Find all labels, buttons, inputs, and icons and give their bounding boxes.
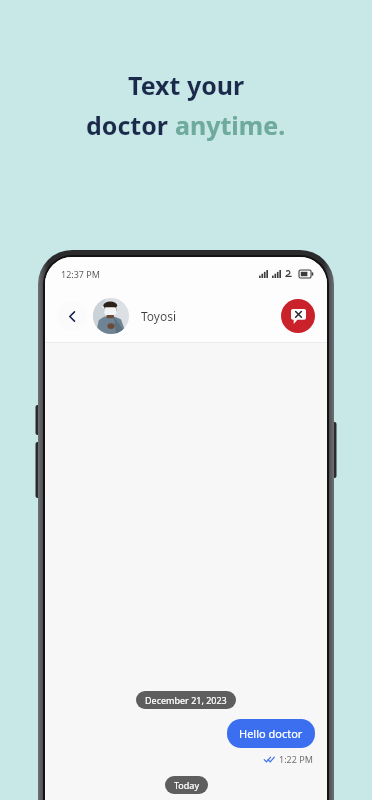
staticText: Text your xyxy=(128,68,245,102)
staticText: anytime. xyxy=(175,108,286,142)
staticText: 12:37 PM xyxy=(61,268,100,280)
staticText: 1:22 PM xyxy=(279,753,313,765)
staticText: Toyosi xyxy=(141,308,177,324)
staticText: Today xyxy=(174,779,199,791)
button[interactable]: Hello doctor xyxy=(227,719,315,748)
button[interactable]: End chat xyxy=(281,299,315,333)
button[interactable]: Back xyxy=(57,301,87,331)
staticText: doctor xyxy=(86,108,175,142)
staticText: December 21, 2023 xyxy=(145,694,227,706)
staticText: Hello doctor xyxy=(239,726,303,741)
